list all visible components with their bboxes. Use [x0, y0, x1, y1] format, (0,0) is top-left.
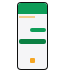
button[interactable]	[30, 28, 46, 32]
button[interactable]	[19, 39, 46, 44]
